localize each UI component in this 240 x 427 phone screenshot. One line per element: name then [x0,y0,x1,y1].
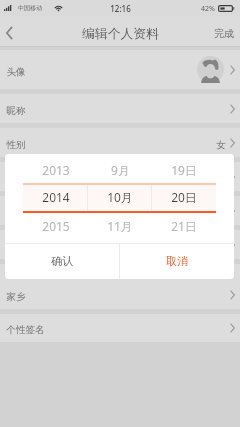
button[interactable]: 生日 [0,162,240,191]
button[interactable]: 取消 [120,244,234,279]
staticText: 完成 [214,27,234,40]
staticText: 中国移动 [18,4,42,12]
staticText: 星座 [6,241,26,253]
staticText: 12:16 [110,3,131,14]
staticText: 2014 [42,189,70,205]
staticText: 生日 [6,173,26,185]
button[interactable]: 头像 [0,50,240,89]
staticText: 编辑个人资料 [82,26,159,42]
staticText: 昵称 [6,105,26,117]
button[interactable]: 确认 [5,244,119,279]
staticText: 10月 [107,189,133,205]
staticText: 20日 [171,189,197,205]
staticText: 9月 [111,162,130,178]
button[interactable]: 星座 [0,230,240,259]
staticText: 2015 [42,218,70,234]
staticText: 取消 [166,254,188,268]
button[interactable]: 昵称 [0,94,240,123]
button[interactable]: 简介 [0,264,240,309]
button[interactable]: 家乡 [0,196,240,225]
staticText: 21日 [171,218,197,234]
staticText: 家乡 [6,291,26,303]
button[interactable]: 家乡 [0,280,240,309]
button[interactable]: 性别 [0,128,240,157]
staticText: 2013 [42,162,70,178]
staticText: 个性签名 [6,324,45,336]
staticText: 头像 [6,66,26,78]
button[interactable]: 个性签名 [0,314,240,342]
button[interactable]: 完成 [204,16,240,47]
staticText: 女 [216,139,226,151]
staticText: 性别 [6,139,26,151]
staticText: 11月 [107,218,133,234]
staticText: 42% [201,4,215,14]
staticText: 19日 [171,162,197,178]
staticText: 确认 [51,254,73,268]
staticText: 简介 [6,283,26,295]
button[interactable]: Back [0,16,19,47]
staticText: 家乡 [6,207,26,219]
staticText: 2014年10月20日 [153,172,226,185]
